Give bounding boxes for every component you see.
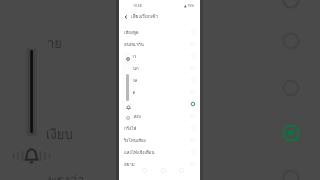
button[interactable]: Sound settings — [124, 55, 132, 63]
button[interactable]: ลมพัด — [119, 86, 200, 98]
button[interactable]: กริ่งไฟ — [119, 122, 200, 134]
staticText: สยาม — [124, 161, 135, 168]
staticText: น้ำไหล — [124, 77, 138, 84]
staticText: ริงโทนเสียง — [124, 137, 146, 144]
button[interactable]: More — [124, 114, 132, 122]
button[interactable]: ริงโทนเสียง — [119, 134, 200, 146]
staticText: แสงไฟแจ้งเตือน — [124, 149, 155, 156]
staticText: สีเขียว — [124, 53, 137, 60]
button[interactable]: สยาม — [119, 158, 200, 170]
button[interactable]: ทะเลสงบ — [119, 110, 200, 122]
staticText: ▲ 76% — [184, 3, 195, 8]
staticText: พรงว่า — [48, 170, 85, 180]
staticText: เสียงนก — [124, 65, 139, 72]
button[interactable]: Volume — [126, 74, 129, 101]
staticText: ลมพัด — [124, 89, 136, 96]
button[interactable]: เสียงพูด — [119, 26, 200, 38]
button[interactable]: เสียงนก — [119, 62, 200, 74]
staticText: เงียบ — [46, 124, 73, 145]
button[interactable]: Ringer mode — [124, 103, 132, 111]
staticText: 10:58 — [133, 3, 142, 8]
staticText: เงียบ — [124, 101, 134, 108]
staticText: เสียงพูด — [124, 29, 139, 36]
button[interactable]: เงียบ — [119, 98, 200, 110]
staticText: เสียงเรียกเข้า — [131, 12, 159, 20]
button[interactable]: สนทนากัน — [119, 38, 200, 50]
button[interactable]: น้ำไหล — [119, 74, 200, 86]
button[interactable]: แสงไฟแจ้งเตือน — [119, 146, 200, 158]
staticText: าย — [47, 33, 62, 54]
button[interactable]: สีเขียว — [119, 50, 200, 62]
staticText: ทะเลสงบ — [124, 113, 142, 120]
staticText: กริ่งไฟ — [124, 125, 137, 132]
staticText: สนทนากัน — [124, 41, 144, 48]
button[interactable]: Back — [121, 12, 130, 21]
